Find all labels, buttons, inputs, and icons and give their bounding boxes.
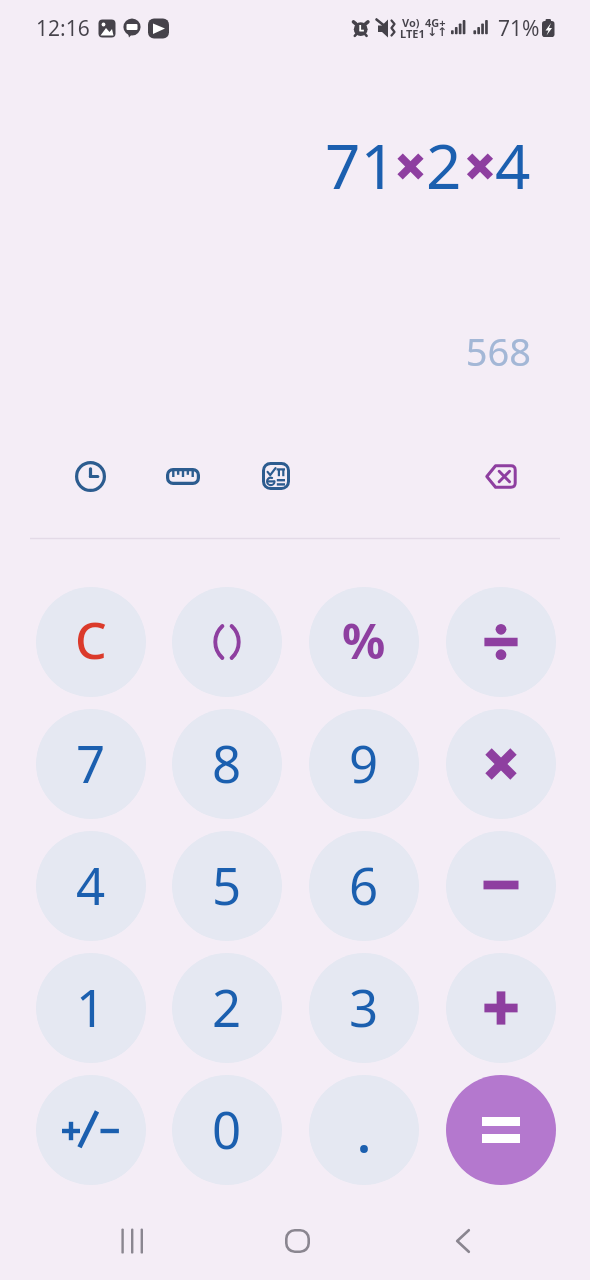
button[interactable]: Multiply — [446, 709, 556, 819]
staticText: LTE1 — [400, 26, 425, 41]
staticText: % — [342, 608, 386, 673]
button[interactable]: 8 — [172, 709, 282, 819]
button[interactable]: . — [309, 1075, 419, 1185]
button[interactable]: Clear — [36, 587, 146, 697]
button[interactable]: 0 — [172, 1075, 282, 1185]
staticText: 1 — [76, 972, 106, 1041]
button[interactable]: 9 — [309, 709, 419, 819]
button[interactable]: Minus — [446, 831, 556, 941]
staticText: 5 — [212, 850, 242, 919]
staticText: 9 — [349, 728, 379, 797]
button[interactable]: 2 — [172, 953, 282, 1063]
staticText: 4 — [76, 850, 106, 919]
button[interactable]: Back — [427, 1205, 499, 1277]
staticText: ↓↑ — [427, 25, 448, 39]
staticText: 7 — [76, 728, 106, 797]
staticText: 2 — [426, 123, 462, 207]
button[interactable]: 1 — [36, 953, 146, 1063]
button[interactable]: Backspace — [477, 452, 525, 500]
button[interactable]: Percent — [309, 587, 419, 697]
staticText: 0 — [212, 1094, 242, 1163]
button[interactable]: 7 — [36, 709, 146, 819]
button[interactable]: Divide — [446, 587, 556, 697]
button[interactable]: 3 — [309, 953, 419, 1063]
button[interactable]: 4 — [36, 831, 146, 941]
button[interactable]: Plus — [446, 953, 556, 1063]
staticText: 4G+ — [425, 15, 446, 30]
button[interactable]: Unit converter — [159, 452, 207, 500]
button[interactable]: Home — [261, 1205, 333, 1277]
staticText: 6 — [349, 850, 379, 919]
button[interactable]: 6 — [309, 831, 419, 941]
staticText: 3 — [349, 972, 379, 1041]
staticText: 12:16 — [36, 14, 90, 43]
button[interactable]: Calculation history — [66, 452, 114, 500]
button[interactable]: Scientific calculator — [252, 452, 300, 500]
staticText: C — [75, 606, 107, 674]
button[interactable]: Recent apps — [96, 1205, 168, 1277]
staticText: 4 — [495, 123, 531, 207]
button[interactable]: 5 — [172, 831, 282, 941]
staticText: Vo) — [402, 15, 420, 30]
staticText: 71 — [325, 123, 396, 207]
staticText: 71% — [498, 14, 540, 43]
button[interactable]: Equals — [446, 1075, 556, 1185]
staticText: 568 — [0, 325, 531, 377]
staticText: 2 — [212, 972, 242, 1041]
staticText: 8 — [212, 728, 242, 797]
button[interactable]: Plus minus — [36, 1075, 146, 1185]
button[interactable]: Parentheses — [172, 587, 282, 697]
